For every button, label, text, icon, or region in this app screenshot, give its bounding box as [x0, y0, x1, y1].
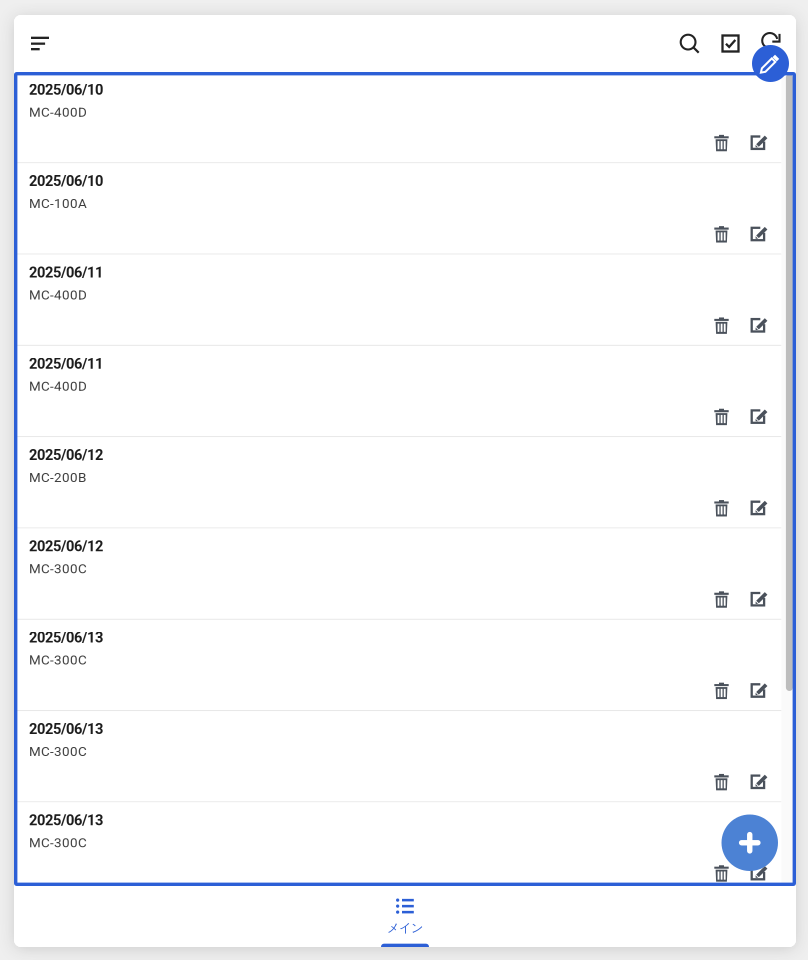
staticText: 2025/06/12 — [29, 446, 103, 463]
button[interactable]: 2025/06/12 — [14, 528, 781, 619]
button[interactable]: Refresh — [751, 15, 792, 72]
button[interactable]: Delete — [702, 767, 740, 797]
button[interactable]: Select all — [710, 15, 751, 72]
button[interactable]: 2025/06/13 — [14, 802, 781, 893]
button[interactable]: Add — [721, 814, 778, 871]
staticText: MC-400D — [29, 104, 87, 120]
staticText: MC-100A — [29, 196, 87, 211]
button[interactable]: Edit — [740, 493, 778, 523]
staticText: 2025/06/12 — [29, 538, 103, 555]
button[interactable]: 2025/06/13 — [14, 711, 781, 801]
button[interactable]: 2025/06/11 — [14, 255, 781, 345]
button[interactable]: Delete — [702, 311, 740, 341]
button[interactable]: Edit — [740, 585, 778, 615]
button[interactable]: Compose — [752, 45, 789, 82]
button[interactable]: メイン — [349, 886, 461, 947]
staticText: メイン — [387, 920, 423, 936]
button[interactable]: Delete — [702, 219, 740, 249]
button[interactable]: Sort — [18, 15, 62, 72]
staticText: 2025/06/13 — [29, 629, 103, 646]
staticText: 2025/06/10 — [29, 81, 103, 98]
button[interactable]: 2025/06/13 — [14, 620, 781, 710]
staticText: MC-300C — [29, 743, 87, 759]
button[interactable]: Delete — [702, 128, 740, 158]
button[interactable]: 2025/06/11 — [14, 346, 781, 436]
staticText: MC-200B — [29, 470, 86, 485]
staticText: MC-400D — [29, 287, 87, 303]
button[interactable]: Delete — [702, 493, 740, 523]
staticText: MC-300C — [29, 561, 87, 577]
staticText: MC-300C — [29, 652, 87, 668]
button[interactable]: Edit — [740, 402, 778, 432]
button[interactable]: 2025/06/10 — [14, 163, 781, 254]
button[interactable]: Search — [669, 15, 710, 72]
button[interactable]: Edit — [740, 676, 778, 706]
button[interactable]: Delete — [702, 676, 740, 706]
button[interactable]: Delete — [702, 858, 740, 888]
button[interactable]: Edit — [740, 858, 778, 888]
staticText: MC-300C — [29, 835, 87, 850]
button[interactable]: Delete — [702, 402, 740, 432]
staticText: 2025/06/13 — [29, 720, 103, 737]
staticText: 2025/06/11 — [29, 355, 103, 372]
staticText: 2025/06/11 — [29, 264, 103, 281]
staticText: MC-400D — [29, 378, 87, 394]
staticText: 2025/06/10 — [29, 172, 103, 190]
staticText: 2025/06/13 — [29, 812, 103, 829]
button[interactable]: Edit — [740, 219, 778, 249]
button[interactable]: 2025/06/10 — [14, 72, 781, 162]
button[interactable]: Delete — [702, 585, 740, 615]
button[interactable]: Edit — [740, 128, 778, 158]
button[interactable]: 2025/06/12 — [14, 437, 781, 527]
button[interactable]: Edit — [740, 311, 778, 341]
button[interactable]: Edit — [740, 767, 778, 797]
